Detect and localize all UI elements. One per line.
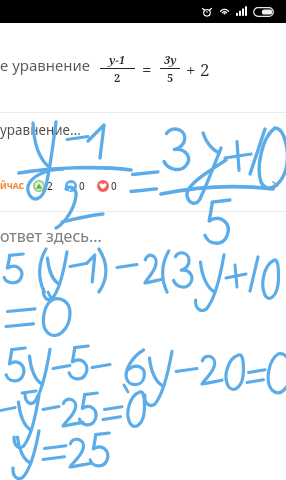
staticText: + 2 [186, 58, 210, 81]
staticText: 3y [164, 52, 177, 67]
staticText: 0 [111, 179, 117, 193]
other: Open answer [271, 181, 280, 190]
button[interactable]: Likes [97, 179, 117, 193]
staticText: уравнение... [0, 121, 81, 139]
button[interactable]: Rating [33, 179, 53, 193]
staticText: = [142, 58, 152, 81]
staticText: 5 [167, 70, 174, 85]
button[interactable]: уравнение... [0, 113, 286, 211]
staticText: y−1 [109, 52, 126, 67]
staticText: ЙЧАС [0, 180, 25, 192]
button[interactable]: Comments [65, 179, 85, 193]
staticText: ответ здесь... [0, 225, 102, 247]
staticText: 0 [79, 179, 85, 193]
staticText: 2 [114, 70, 121, 85]
staticText: е уравнение [0, 55, 90, 75]
staticText: 2 [47, 179, 53, 193]
